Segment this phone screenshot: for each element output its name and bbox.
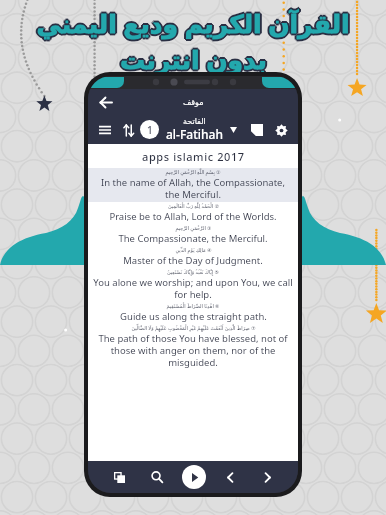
staticText: القرآن الكريم وديع اليمني xyxy=(35,5,349,39)
staticText: 1 xyxy=(147,123,153,137)
staticText: القرآن الكريم وديع اليمني xyxy=(37,5,351,39)
staticText: القرآن الكريم وديع اليمني xyxy=(37,7,351,41)
staticText: اهْدِنَا الصِّرَاطَ الْمُسْتَقِيمَ ⑥ xyxy=(166,303,220,310)
staticText: القرآن الكريم وديع اليمني xyxy=(38,6,352,40)
staticText: القرآن الكريم وديع اليمني xyxy=(35,7,349,41)
staticText: القرآن الكريم وديع اليمني xyxy=(36,6,350,40)
staticText: إِيَّاكَ نَعْبُدُ وَإِيَّاكَ نَسْتَعِينُ… xyxy=(167,269,219,276)
staticText: الفاتحة xyxy=(183,117,206,126)
button[interactable]: اهْدِنَا الصِّرَاطَ الْمُسْتَقِيمَ ⑥ xyxy=(88,302,298,324)
button[interactable]: Expand xyxy=(225,122,241,138)
button[interactable]: الرَّحْمَنِ الرَّحِيمِ ③ xyxy=(88,224,298,246)
staticText: In the name of Allah, the Compassionate,… xyxy=(93,176,293,201)
staticText: Praise be to Allah, Lord of the Worlds. xyxy=(109,210,277,223)
button[interactable]: Search xyxy=(138,461,175,493)
staticText: بدون انترنت xyxy=(118,42,265,76)
button[interactable]: Settings xyxy=(271,120,291,140)
staticText: القرآن الكريم وديع اليمني xyxy=(34,6,348,40)
button[interactable]: Back xyxy=(94,91,116,113)
button[interactable]: Pages xyxy=(247,120,267,140)
staticText: The path of those You have blessed, not … xyxy=(93,332,293,369)
staticText: بدون انترنت xyxy=(121,43,268,77)
staticText: apps islamic 2017 xyxy=(142,149,245,164)
staticText: Master of the Day of Judgment. xyxy=(123,254,263,267)
staticText: بدون انترنت xyxy=(119,41,266,75)
button[interactable]: الْحَمْدُ لِلَّهِ رَبِّ الْعَالَمِينَ ② xyxy=(88,202,298,224)
staticText: بدون انترنت xyxy=(120,40,267,74)
button[interactable]: صِرَاطَ الَّذِينَ أَنْعَمْتَ عَلَيْهِمْ … xyxy=(88,324,298,370)
staticText: You alone we worship; and upon You, we c… xyxy=(93,276,293,301)
button[interactable]: Next xyxy=(249,461,286,493)
staticText: بدون انترنت xyxy=(122,42,269,76)
staticText: بدون انترنت xyxy=(121,41,268,75)
button[interactable]: بِسْمِ اللَّهِ الرَّحْمَنِ الرَّحِيمِ ① xyxy=(88,168,298,202)
staticText: Guide us along the straight path. xyxy=(120,310,267,323)
button[interactable]: Play xyxy=(175,461,212,493)
staticText: مَالِكِ يَوْمِ الدِّينِ ④ xyxy=(175,247,212,254)
button[interactable]: 1 xyxy=(140,120,159,139)
button[interactable]: Sort xyxy=(118,120,138,140)
button[interactable]: الفاتحة xyxy=(164,117,225,142)
staticText: موقف xyxy=(183,98,204,107)
staticText: بِسْمِ اللَّهِ الرَّحْمَنِ الرَّحِيمِ ① xyxy=(165,169,221,176)
staticText: بدون انترنت xyxy=(120,44,267,78)
staticText: صِرَاطَ الَّذِينَ أَنْعَمْتَ عَلَيْهِمْ … xyxy=(131,325,256,332)
staticText: al-Fatihah xyxy=(166,126,223,142)
button[interactable]: Menu xyxy=(95,120,115,140)
button[interactable]: مَالِكِ يَوْمِ الدِّينِ ④ xyxy=(88,246,298,268)
button[interactable]: Copy xyxy=(100,461,138,493)
staticText: The Compassionate, the Merciful. xyxy=(118,232,268,245)
button[interactable]: إِيَّاكَ نَعْبُدُ وَإِيَّاكَ نَسْتَعِينُ… xyxy=(88,268,298,302)
staticText: بدون انترنت xyxy=(119,43,266,77)
staticText: بدون انترنت xyxy=(120,42,267,76)
button[interactable]: Previous xyxy=(212,461,249,493)
staticText: القرآن الكريم وديع اليمني xyxy=(36,4,350,38)
staticText: الرَّحْمَنِ الرَّحِيمِ ③ xyxy=(175,225,212,232)
staticText: القرآن الكريم وديع اليمني xyxy=(36,8,350,42)
staticText: الْحَمْدُ لِلَّهِ رَبِّ الْعَالَمِينَ ② xyxy=(168,203,219,210)
